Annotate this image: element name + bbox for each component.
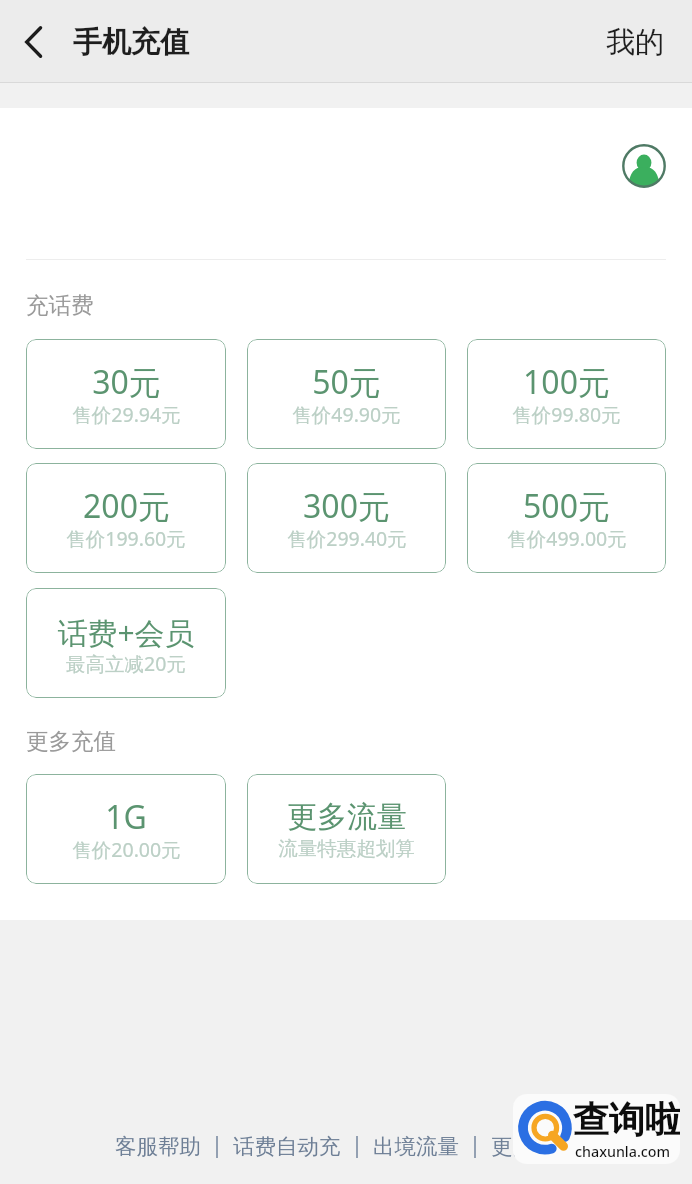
staticText: 售价199.60元: [66, 525, 186, 552]
staticText: 售价299.40元: [287, 525, 407, 552]
staticText: 售价29.94元: [72, 401, 181, 428]
button[interactable]: 客服帮助: [115, 1133, 201, 1160]
staticText: 更多流量: [287, 798, 407, 836]
staticText: 出境流量: [373, 1133, 459, 1160]
staticText: 最高立减20元: [66, 650, 186, 677]
button[interactable]: My account: [610, 132, 678, 200]
staticText: 100元: [523, 360, 610, 404]
staticText: 50元: [312, 360, 381, 404]
button[interactable]: 200元: [26, 463, 226, 573]
staticText: 更多服务: [491, 1133, 577, 1160]
staticText: 500元: [523, 484, 610, 528]
staticText: 查询啦: [573, 1097, 680, 1142]
button[interactable]: 话费自动充: [233, 1133, 341, 1160]
button[interactable]: Back: [10, 15, 64, 69]
staticText: 售价499.00元: [507, 525, 627, 552]
staticText: 流量特惠超划算: [278, 836, 415, 861]
button[interactable]: 话费+会员: [26, 588, 226, 698]
button[interactable]: 500元: [467, 463, 666, 573]
staticText: 售价20.00元: [72, 836, 181, 863]
staticText: 30元: [92, 360, 161, 404]
button[interactable]: 300元: [247, 463, 446, 573]
button[interactable]: 出境流量: [373, 1133, 459, 1160]
staticText: 我的: [606, 24, 664, 61]
button[interactable]: 更多流量: [247, 774, 446, 884]
staticText: chaxunla.com: [575, 1142, 671, 1161]
button[interactable]: 30元: [26, 339, 226, 449]
staticText: 1G: [105, 795, 147, 839]
staticText: 充话费: [26, 291, 94, 319]
staticText: 更多充值: [26, 727, 116, 755]
staticText: 手机充值: [73, 24, 189, 61]
button[interactable]: 100元: [467, 339, 666, 449]
staticText: 200元: [83, 484, 170, 528]
button[interactable]: 50元: [247, 339, 446, 449]
button[interactable]: 1G: [26, 774, 226, 884]
staticText: 售价49.90元: [292, 401, 401, 428]
button[interactable]: 我的: [575, 11, 692, 72]
staticText: 300元: [303, 484, 390, 528]
staticText: 客服帮助: [115, 1133, 201, 1160]
staticText: 话费自动充: [233, 1133, 341, 1160]
staticText: 话费+会员: [57, 612, 195, 653]
button[interactable]: 更多服务: [491, 1133, 577, 1160]
staticText: 售价99.80元: [512, 401, 621, 428]
